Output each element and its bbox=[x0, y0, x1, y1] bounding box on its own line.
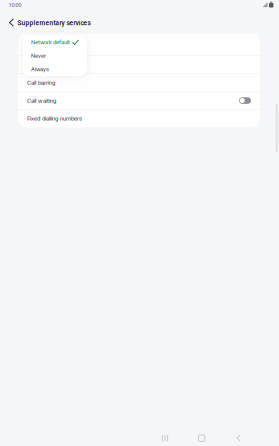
button[interactable]: Back bbox=[227, 429, 251, 446]
button[interactable]: Back bbox=[3, 14, 19, 30]
button[interactable]: Call blocking bbox=[18, 56, 260, 73]
button[interactable]: Never bbox=[23, 49, 87, 62]
staticText: Network default bbox=[31, 39, 70, 46]
button[interactable]: Call waiting bbox=[18, 92, 260, 109]
button[interactable]: Network default bbox=[23, 35, 87, 49]
button[interactable]: Always bbox=[23, 62, 87, 76]
staticText: Always bbox=[31, 66, 49, 73]
button[interactable]: Recent apps bbox=[153, 429, 177, 446]
staticText: Call forwarding bbox=[27, 41, 65, 48]
button[interactable]: Call forwarding bbox=[18, 33, 260, 55]
button[interactable]: Call barring bbox=[18, 74, 260, 91]
button[interactable]: Fixed dialling numbers bbox=[18, 110, 260, 127]
staticText: Fixed dialling numbers bbox=[27, 115, 82, 122]
staticText: Supplementary services bbox=[17, 19, 90, 27]
staticText: Call blocking bbox=[27, 61, 58, 68]
staticText: 10:00 bbox=[9, 2, 22, 8]
button[interactable]: Home bbox=[190, 429, 214, 446]
staticText: Call barring bbox=[27, 79, 55, 86]
staticText: Never bbox=[31, 52, 46, 59]
staticText: Call waiting bbox=[27, 97, 56, 104]
